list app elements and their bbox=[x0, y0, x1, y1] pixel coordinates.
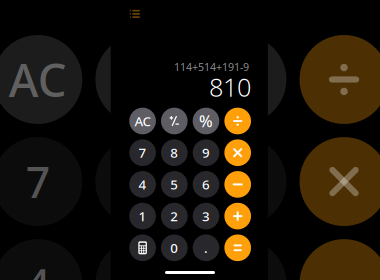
staticText: . bbox=[204, 239, 208, 257]
button[interactable]: . bbox=[193, 234, 219, 261]
button[interactable]: 1 bbox=[129, 203, 156, 229]
button[interactable]: Plus minus bbox=[161, 108, 188, 134]
staticText: 3 bbox=[202, 207, 210, 225]
staticText: % bbox=[199, 110, 213, 132]
button[interactable]: Equals bbox=[224, 234, 251, 261]
button[interactable]: Add bbox=[224, 203, 251, 229]
staticText: 1 bbox=[139, 207, 147, 225]
staticText: 5 bbox=[170, 175, 178, 193]
staticText: 6 bbox=[230, 255, 254, 280]
button[interactable]: Multiply bbox=[224, 139, 251, 166]
staticText: 4 bbox=[26, 255, 50, 280]
button[interactable]: 0 bbox=[161, 234, 188, 261]
button[interactable]: Divide bbox=[224, 108, 251, 134]
button[interactable]: 3 bbox=[193, 203, 219, 229]
button[interactable]: 2 bbox=[161, 203, 188, 229]
staticText: % bbox=[220, 46, 263, 113]
button[interactable]: 4 bbox=[129, 171, 156, 198]
staticText: AC bbox=[135, 112, 151, 130]
button[interactable]: Percent bbox=[193, 108, 219, 134]
staticText: 8 bbox=[170, 144, 178, 161]
button[interactable]: Calculator modes bbox=[129, 234, 156, 261]
staticText: 810 bbox=[209, 70, 251, 104]
staticText: 7 bbox=[139, 144, 147, 161]
staticText: 6 bbox=[202, 175, 210, 193]
staticText: 8 bbox=[128, 153, 152, 210]
button[interactable]: 5 bbox=[161, 171, 188, 198]
staticText: 4 bbox=[139, 175, 147, 193]
staticText: 7 bbox=[26, 153, 50, 210]
button[interactable]: 8 bbox=[161, 139, 188, 166]
staticText: 5 bbox=[128, 255, 152, 280]
staticText: 114+514+191-9 bbox=[174, 60, 249, 74]
button[interactable]: History bbox=[126, 6, 144, 22]
staticText: AC bbox=[9, 49, 67, 110]
button[interactable]: Subtract bbox=[224, 171, 251, 198]
button[interactable]: AC bbox=[129, 108, 156, 134]
staticText: 0 bbox=[170, 239, 178, 257]
button[interactable]: 6 bbox=[193, 171, 219, 198]
staticText: 9 bbox=[230, 153, 254, 210]
button[interactable]: 7 bbox=[129, 139, 156, 166]
staticText: 2 bbox=[170, 207, 178, 225]
staticText: 9 bbox=[202, 144, 210, 161]
button[interactable]: 9 bbox=[193, 139, 219, 166]
